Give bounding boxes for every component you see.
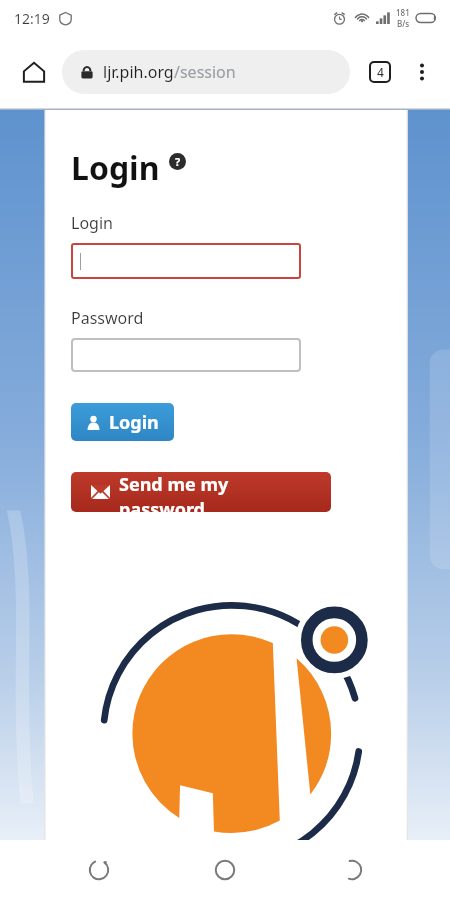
button[interactable]: Send me my password bbox=[71, 472, 331, 512]
staticText: 4 bbox=[377, 64, 384, 80]
button[interactable]: Tabs: 4 open bbox=[360, 52, 400, 92]
button[interactable]: More options bbox=[402, 52, 442, 92]
staticText: Password bbox=[71, 307, 144, 329]
staticText: Login bbox=[71, 212, 113, 234]
button[interactable]: Back bbox=[324, 842, 380, 898]
staticText: Login bbox=[71, 146, 160, 190]
staticText: Send me my password bbox=[119, 472, 311, 512]
staticText: /session bbox=[174, 61, 236, 83]
staticText: 181 bbox=[396, 7, 410, 18]
button[interactable]: Help bbox=[169, 153, 186, 170]
button[interactable]: Login bbox=[71, 403, 174, 441]
button[interactable]: Home bbox=[14, 52, 54, 92]
button[interactable]: Home bbox=[197, 842, 253, 898]
staticText: Login bbox=[109, 410, 159, 435]
button[interactable] bbox=[71, 338, 301, 372]
staticText: B/s bbox=[397, 18, 410, 29]
button[interactable]: Recent apps bbox=[71, 842, 127, 898]
button[interactable]: ljr.pih.org bbox=[62, 50, 350, 94]
staticText: ? bbox=[175, 154, 181, 169]
staticText: 12:19 bbox=[14, 9, 50, 28]
staticText: ljr.pih.org bbox=[103, 61, 174, 83]
button[interactable] bbox=[71, 243, 301, 279]
